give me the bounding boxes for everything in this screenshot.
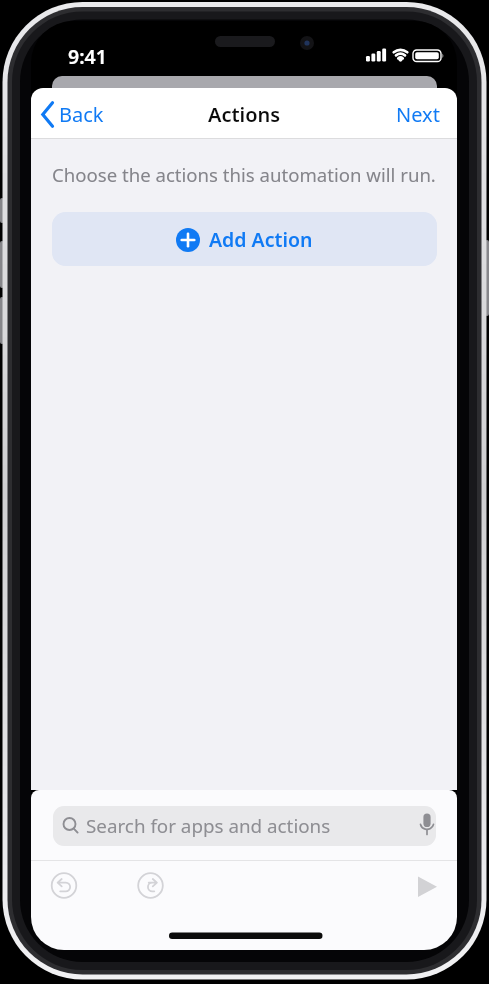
staticText: Search for apps and actions <box>86 813 331 839</box>
button[interactable]: Back <box>39 97 112 132</box>
button[interactable] <box>136 871 164 899</box>
staticText: 9:41 <box>68 43 107 70</box>
staticText: Add Action <box>209 226 313 253</box>
button[interactable] <box>50 871 78 899</box>
button[interactable]: Search for apps and actions <box>53 806 436 846</box>
button[interactable]: Add Action <box>52 212 437 266</box>
staticText: Next <box>396 101 440 128</box>
staticText: Choose the actions this automation will … <box>52 162 436 187</box>
button[interactable]: Next <box>391 97 445 132</box>
button[interactable] <box>409 869 443 901</box>
staticText: Back <box>59 101 104 128</box>
staticText: Actions <box>208 101 281 128</box>
